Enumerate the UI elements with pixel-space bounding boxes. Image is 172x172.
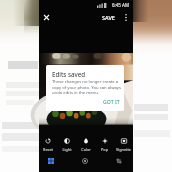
staticText: Edits saved <box>52 70 86 78</box>
button[interactable]: Pop <box>95 138 114 152</box>
staticText: Reset <box>43 147 53 152</box>
button[interactable]: Adjust <box>43 153 59 169</box>
button[interactable]: SAVE <box>100 12 117 23</box>
staticText: Vignette <box>116 147 131 152</box>
button[interactable]: GOT IT <box>101 96 122 107</box>
button[interactable]: Close <box>41 12 52 23</box>
button[interactable]: Color <box>76 138 95 152</box>
staticText: Color <box>81 147 91 152</box>
button[interactable]: More options <box>121 12 131 22</box>
button[interactable]: Filters <box>77 153 93 169</box>
staticText: Pop <box>101 147 108 152</box>
staticText: SAVE <box>102 14 115 21</box>
button[interactable]: Crop and rotate <box>111 153 127 169</box>
button[interactable]: Vignette <box>114 138 133 152</box>
button[interactable]: Light <box>57 138 76 152</box>
staticText: GOT IT <box>103 98 120 105</box>
staticText: These changes no longer create a copy of… <box>52 79 122 95</box>
staticText: Light <box>62 147 72 152</box>
staticText: 6:45 AM <box>112 2 130 8</box>
button[interactable]: Reset <box>39 138 57 152</box>
